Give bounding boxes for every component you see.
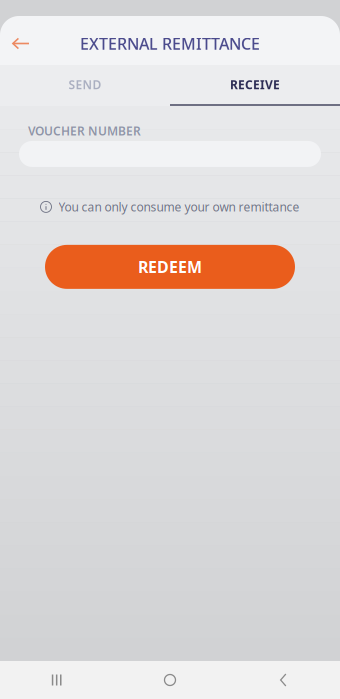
button[interactable]: Recents — [0, 661, 113, 699]
staticText: You can only consume your own remittance — [58, 199, 299, 215]
staticText: EXTERNAL REMITTANCE — [80, 33, 260, 54]
button[interactable]: Back — [0, 22, 42, 64]
button[interactable]: Back — [227, 661, 340, 699]
staticText: VOUCHER NUMBER — [28, 123, 141, 139]
staticText: RECEIVE — [230, 76, 280, 92]
button[interactable]: REDEEM — [45, 245, 295, 289]
staticText: REDEEM — [138, 256, 202, 277]
staticText: SEND — [68, 76, 101, 92]
button[interactable]: SEND — [0, 65, 170, 106]
button[interactable]: Home — [113, 661, 227, 699]
button[interactable]: RECEIVE — [170, 65, 340, 106]
